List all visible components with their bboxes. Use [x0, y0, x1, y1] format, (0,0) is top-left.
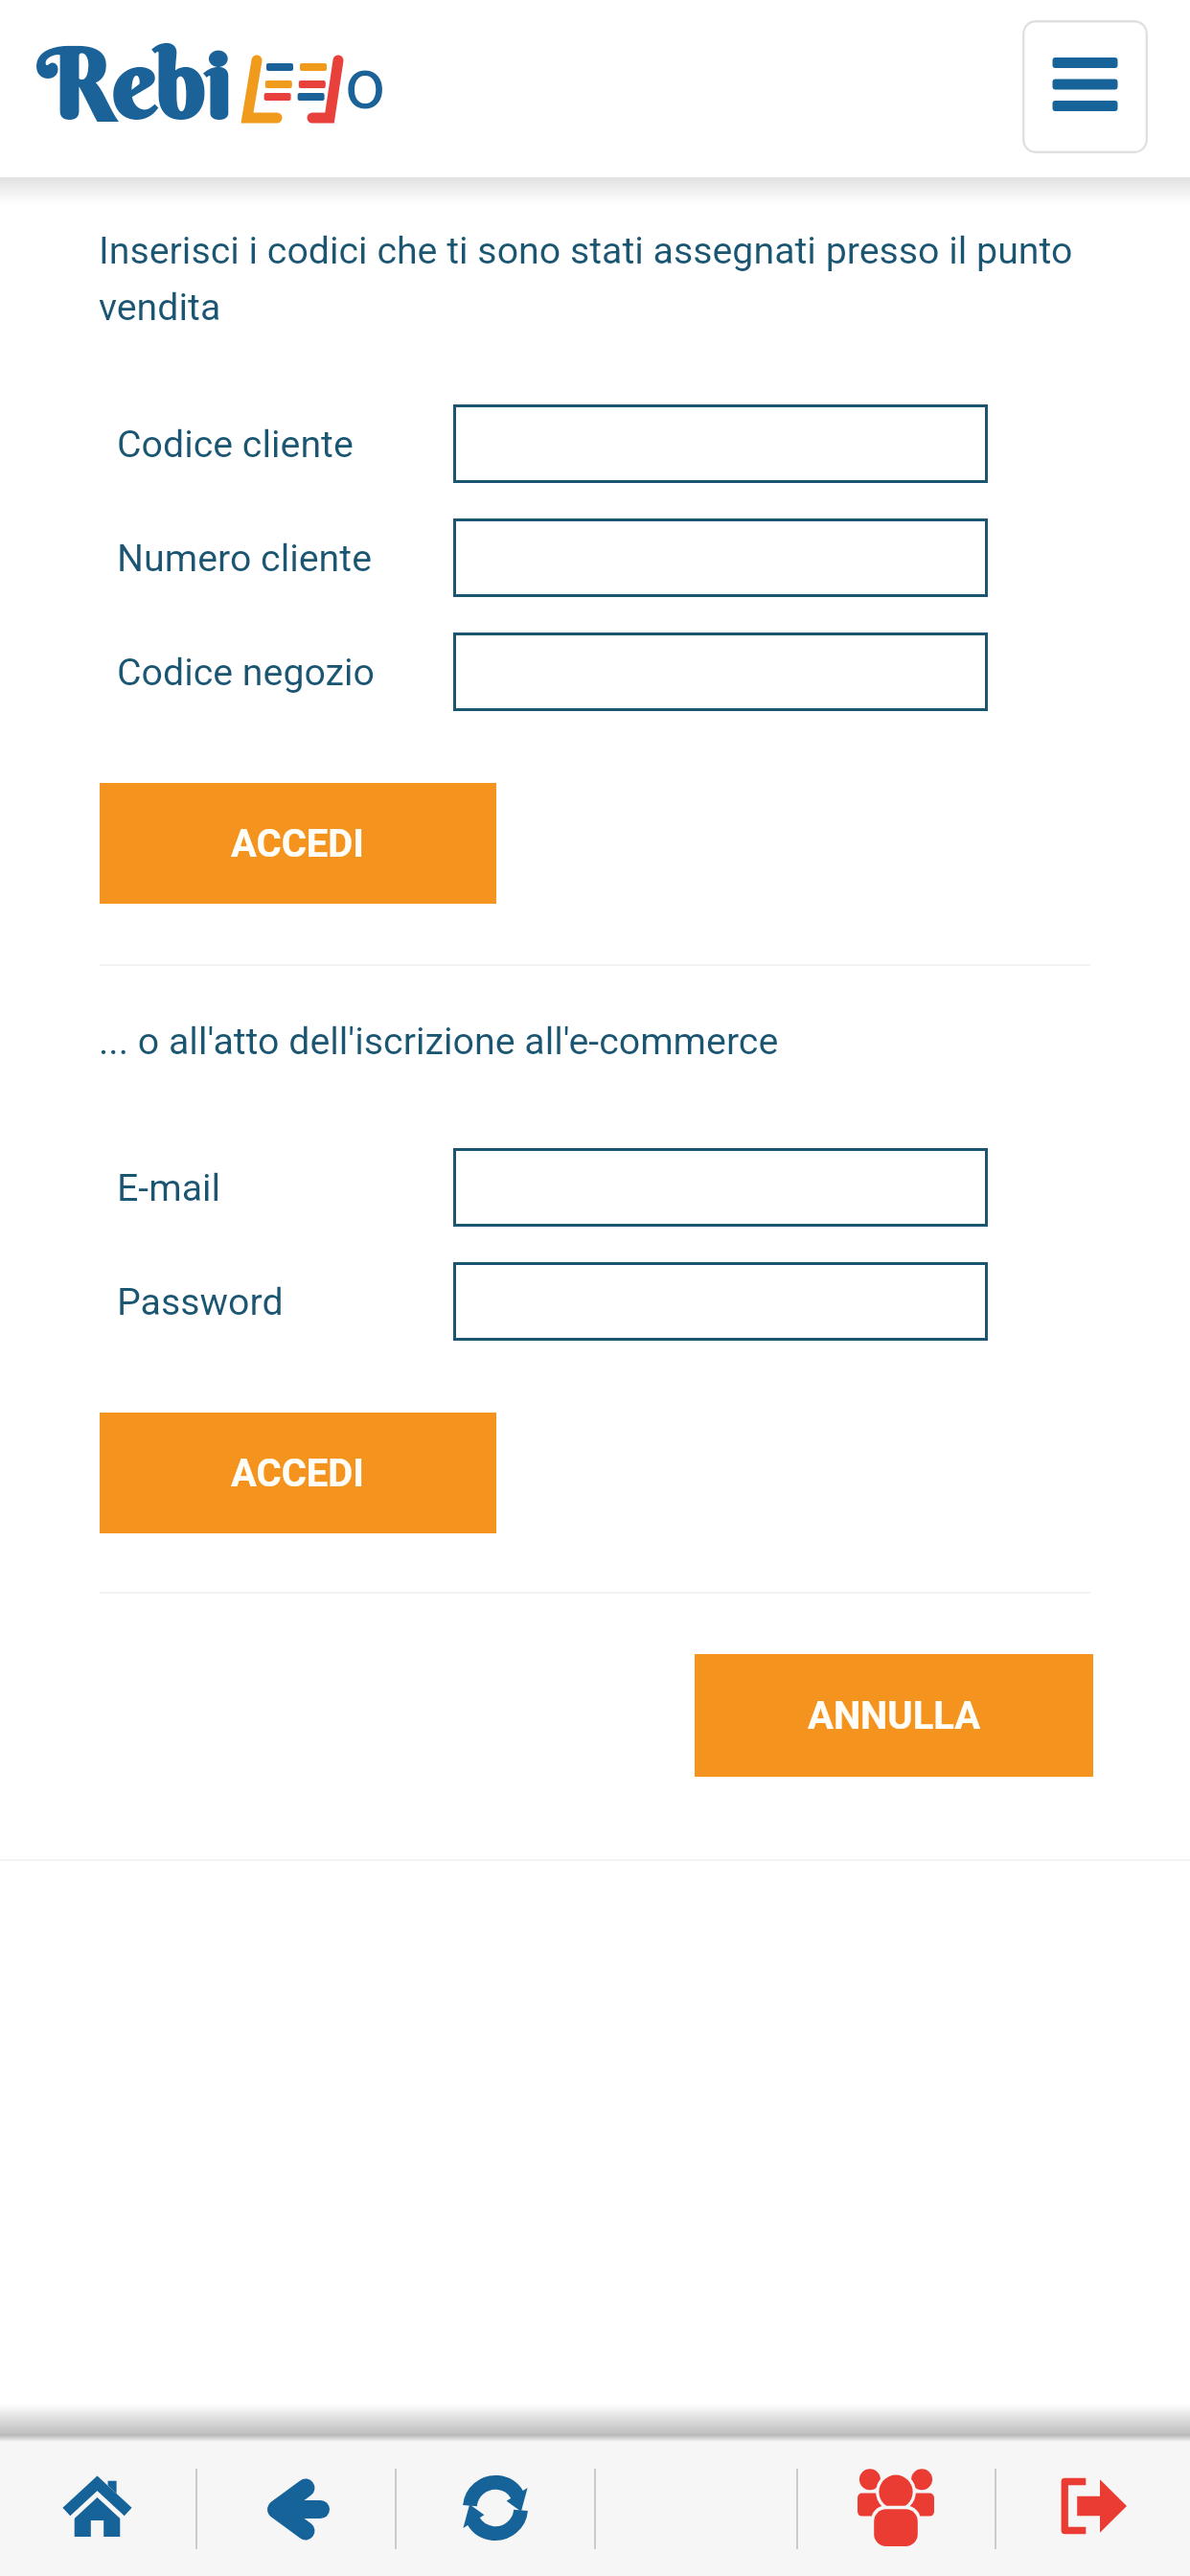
button[interactable]: Logout: [997, 2434, 1189, 2576]
staticText: o: [345, 42, 386, 126]
button[interactable]: Home: [1, 2434, 193, 2576]
button[interactable]: ACCEDI: [100, 1413, 496, 1533]
staticText: Password: [117, 1280, 284, 1324]
staticText: ... o all'atto dell'iscrizione all'e-com…: [99, 1020, 779, 1064]
staticText: Codice cliente: [117, 423, 354, 467]
button[interactable]: Back: [202, 2434, 394, 2576]
button[interactable]: [453, 1148, 988, 1227]
button[interactable]: [453, 1262, 988, 1341]
staticText: ANNULLA: [808, 1693, 981, 1738]
button[interactable]: ANNULLA: [695, 1654, 1093, 1777]
button[interactable]: Menu: [1022, 20, 1148, 153]
button[interactable]: Users: [800, 2434, 992, 2576]
staticText: Inserisci i codici che ti sono stati ass…: [99, 229, 1089, 330]
button[interactable]: ACCEDI: [100, 783, 496, 904]
button[interactable]: [453, 404, 988, 483]
staticText: Codice negozio: [117, 651, 376, 695]
staticText: Rebi: [36, 26, 231, 122]
staticText: E-mail: [117, 1166, 221, 1210]
button[interactable]: [453, 632, 988, 711]
button[interactable]: [453, 518, 988, 597]
staticText: ACCEDI: [231, 1451, 365, 1496]
staticText: ACCEDI: [231, 821, 365, 866]
button[interactable]: Refresh: [400, 2434, 591, 2576]
staticText: Numero cliente: [117, 537, 373, 581]
